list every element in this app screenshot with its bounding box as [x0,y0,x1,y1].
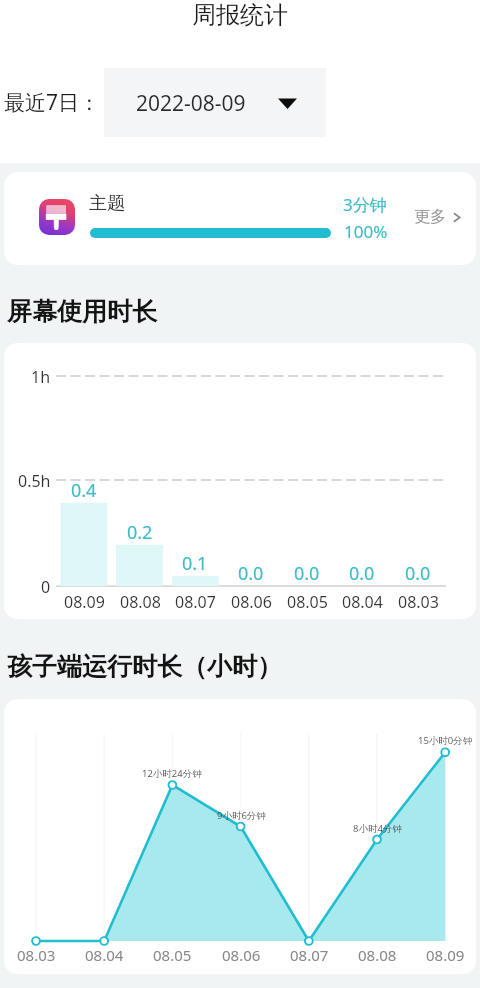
staticText: 08.04 [85,945,124,965]
staticText: 0.2 [127,520,153,545]
staticText: 08.05 [287,591,328,613]
staticText: 8小时4分钟 [353,822,402,835]
staticText: 0.0 [349,561,375,586]
staticText: 0.4 [71,478,97,503]
staticText: 更多 [414,207,446,227]
staticText: 08.09 [426,945,465,965]
staticText: 100% [344,220,388,243]
staticText: 2022-08-09 [136,89,246,118]
staticText: 孩子端运行时长（小时） [7,651,282,682]
staticText: 08.08 [358,945,397,965]
staticText: 0.0 [405,561,431,586]
staticText: 08.08 [120,591,161,613]
staticText: 0.0 [238,561,264,586]
staticText: 3分钟 [343,193,387,216]
staticText: 08.07 [175,591,216,613]
staticText: 08.03 [17,945,56,965]
staticText: 08.07 [290,945,329,965]
staticText: 1h [31,366,51,388]
staticText: 周报统计 [192,0,288,30]
button[interactable]: 2022-08-09 [104,68,326,137]
staticText: 08.06 [231,591,272,613]
staticText: 08.05 [153,945,192,965]
staticText: 9小时6分钟 [217,809,266,822]
staticText: 08.06 [222,945,261,965]
staticText: 15小时0分钟 [418,734,473,747]
staticText: 08.04 [342,591,383,613]
button[interactable]: 主题 [4,172,476,265]
staticText: 0 [41,576,51,598]
staticText: 最近7日： [4,88,101,117]
other: Select date range [278,97,297,109]
staticText: 12小时24分钟 [142,767,202,780]
staticText: 08.03 [398,591,439,613]
staticText: 0.1 [182,551,208,576]
staticText: 0.5h [18,470,51,492]
staticText: 0.0 [294,561,320,586]
staticText: 08.09 [64,591,105,613]
staticText: 屏幕使用时长 [7,296,157,327]
staticText: 主题 [89,192,125,215]
